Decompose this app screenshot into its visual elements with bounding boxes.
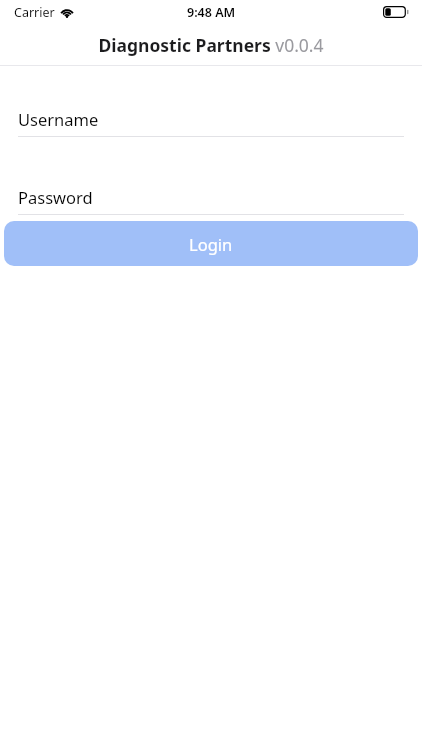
- staticText: Login: [189, 233, 233, 255]
- staticText: 9:48 AM: [187, 4, 236, 21]
- button[interactable]: Username: [0, 106, 422, 137]
- staticText: Carrier: [14, 4, 55, 21]
- staticText: Diagnostic Partners v0.0.4: [98, 33, 324, 57]
- staticText: Username: [18, 108, 99, 130]
- staticText: Password: [18, 186, 93, 208]
- button[interactable]: Password: [0, 184, 422, 215]
- button[interactable]: Login: [4, 221, 418, 266]
